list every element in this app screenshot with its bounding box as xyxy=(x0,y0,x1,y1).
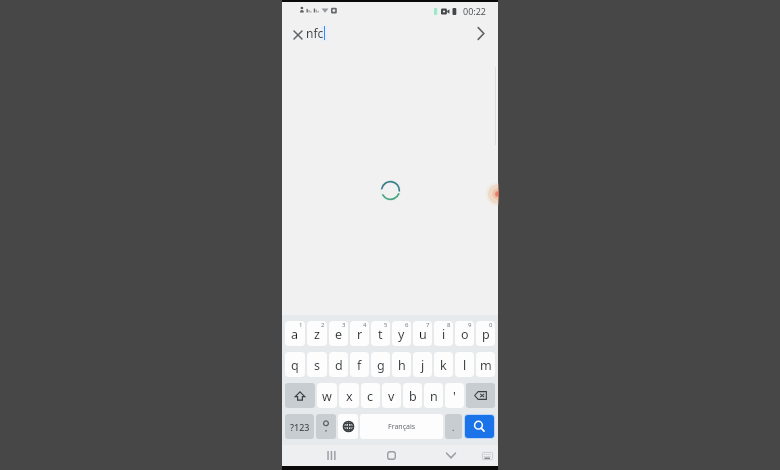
staticText: 3 xyxy=(342,321,346,329)
staticText: z xyxy=(314,326,320,343)
staticText: k xyxy=(440,357,447,374)
button[interactable]: Clear xyxy=(289,26,306,43)
button[interactable]: z xyxy=(307,321,327,346)
button[interactable]: h xyxy=(392,352,411,377)
staticText: n xyxy=(430,388,438,405)
button[interactable]: Shift xyxy=(285,383,315,408)
button[interactable]: Space xyxy=(360,414,443,439)
staticText: 00:22 xyxy=(463,5,487,17)
button[interactable]: Submit search xyxy=(471,23,491,43)
button[interactable]: y xyxy=(392,321,411,346)
staticText: 0 xyxy=(489,321,493,329)
staticText: 1 xyxy=(299,321,303,329)
button[interactable]: a xyxy=(285,321,305,346)
staticText: 4 xyxy=(363,321,367,329)
staticText: u xyxy=(419,326,427,343)
staticText: a xyxy=(291,326,299,343)
button[interactable]: s xyxy=(307,352,327,377)
button[interactable]: Recents xyxy=(319,445,343,466)
button[interactable]: b xyxy=(403,383,422,408)
staticText: t xyxy=(378,326,383,343)
button[interactable]: Language xyxy=(338,414,358,439)
staticText: ?123 xyxy=(290,421,310,433)
staticText: e xyxy=(335,326,343,343)
staticText: h xyxy=(398,357,406,374)
button[interactable]: d xyxy=(329,352,348,377)
button[interactable]: c xyxy=(361,383,380,408)
staticText: v xyxy=(388,388,395,405)
staticText: s xyxy=(314,357,320,374)
staticText: l xyxy=(463,357,467,374)
button[interactable]: i xyxy=(434,321,453,346)
button[interactable]: w xyxy=(317,383,337,408)
staticText: nfc xyxy=(306,25,324,41)
button[interactable]: x xyxy=(339,383,359,408)
staticText: 8 xyxy=(447,321,451,329)
staticText: 5 xyxy=(384,321,388,329)
button[interactable]: j xyxy=(413,352,432,377)
button[interactable]: m xyxy=(476,352,495,377)
button[interactable]: t xyxy=(371,321,390,346)
staticText: f xyxy=(357,357,362,374)
button[interactable]: f xyxy=(350,352,369,377)
staticText: 9 xyxy=(468,321,472,329)
staticText: ' xyxy=(453,388,456,405)
button[interactable]: l xyxy=(455,352,474,377)
staticText: d xyxy=(335,357,343,374)
button[interactable]: q xyxy=(285,352,305,377)
staticText: c xyxy=(367,388,374,405)
staticText: w xyxy=(322,388,332,405)
staticText: i xyxy=(442,326,446,343)
staticText: m xyxy=(480,357,492,374)
staticText: . xyxy=(452,421,455,433)
staticText: Français xyxy=(388,422,416,432)
button[interactable]: Hide keyboard xyxy=(439,445,463,466)
button[interactable]: n xyxy=(424,383,443,408)
button[interactable]: Search xyxy=(465,415,494,438)
staticText: b xyxy=(409,388,417,405)
button[interactable]: Home xyxy=(379,445,403,466)
staticText: y xyxy=(398,326,405,343)
staticText: g xyxy=(377,357,385,374)
button[interactable]: g xyxy=(371,352,390,377)
staticText: j xyxy=(421,357,425,374)
button[interactable]: Symbols xyxy=(285,414,314,439)
button[interactable]: o xyxy=(455,321,474,346)
button[interactable]: k xyxy=(434,352,453,377)
staticText: q xyxy=(291,357,299,374)
button[interactable]: Switch keyboard xyxy=(476,445,498,466)
button[interactable]: Backspace xyxy=(466,383,495,408)
button[interactable]: e xyxy=(329,321,348,346)
button[interactable]: v xyxy=(382,383,401,408)
button[interactable]: r xyxy=(350,321,369,346)
button[interactable]: Period xyxy=(445,414,462,439)
staticText: r xyxy=(357,326,363,343)
staticText: x xyxy=(346,388,353,405)
staticText: 2 xyxy=(321,321,325,329)
staticText: p xyxy=(482,326,490,343)
button[interactable]: ' xyxy=(445,383,464,408)
button[interactable]: Emoji xyxy=(316,414,336,439)
staticText: o xyxy=(461,326,469,343)
staticText: 7 xyxy=(426,321,430,329)
staticText: 6 xyxy=(405,321,409,329)
button[interactable]: p xyxy=(476,321,495,346)
button[interactable]: u xyxy=(413,321,432,346)
